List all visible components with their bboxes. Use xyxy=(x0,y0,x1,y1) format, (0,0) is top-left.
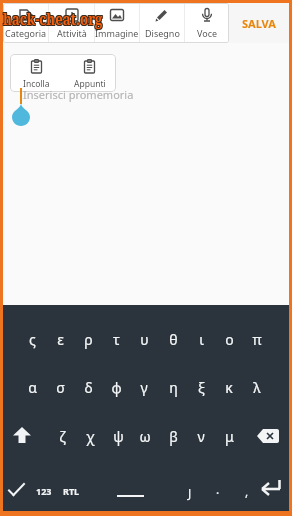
button[interactable]: ω xyxy=(131,425,159,447)
button[interactable]: μ xyxy=(215,425,243,447)
button[interactable] xyxy=(13,427,31,444)
button[interactable] xyxy=(257,429,279,443)
button[interactable]: λ xyxy=(243,376,271,398)
staticText: φ xyxy=(111,378,122,397)
staticText: α xyxy=(28,378,37,397)
button[interactable]: RTL xyxy=(57,480,85,502)
staticText: hack-cheat.org xyxy=(2,8,102,31)
staticText: γ xyxy=(140,378,148,397)
button[interactable]: 123 xyxy=(30,480,58,502)
button[interactable]: δ xyxy=(74,376,102,398)
staticText: 123 xyxy=(36,485,52,497)
button[interactable]: Categoria xyxy=(3,3,48,43)
button[interactable]: Appunti xyxy=(63,54,116,92)
staticText: κ xyxy=(225,378,233,397)
button[interactable]: υ xyxy=(130,328,158,350)
staticText: hack-cheat.org xyxy=(4,7,104,30)
button[interactable]: η xyxy=(159,376,187,398)
button[interactable]: κ xyxy=(215,376,243,398)
button[interactable]: Disegno xyxy=(140,3,184,43)
staticText: Categoria xyxy=(5,27,47,39)
button[interactable]: γ xyxy=(130,376,158,398)
staticText: λ xyxy=(253,378,261,397)
staticText: ζ xyxy=(59,427,66,446)
staticText: hack-cheat.org xyxy=(3,7,103,30)
button[interactable]: Incolla xyxy=(10,54,63,92)
staticText: σ xyxy=(56,378,65,397)
button[interactable]: ς xyxy=(18,328,46,350)
button[interactable]: ι xyxy=(187,328,215,350)
staticText: Disegno xyxy=(145,27,180,39)
button[interactable]: ο xyxy=(215,328,243,350)
staticText: ψ xyxy=(113,427,124,446)
button[interactable]: α xyxy=(18,376,46,398)
button[interactable]: ξ xyxy=(187,376,215,398)
staticText: hack-cheat.org xyxy=(4,8,104,31)
staticText: , xyxy=(245,483,249,499)
staticText: hack-cheat.org xyxy=(2,7,102,30)
staticText: Appunti xyxy=(74,78,106,90)
button[interactable]: Voce xyxy=(185,3,229,43)
button[interactable]: θ xyxy=(159,328,187,350)
staticText: ω xyxy=(139,427,151,446)
button[interactable]: Immagine xyxy=(95,3,139,43)
button[interactable]: , xyxy=(233,480,261,502)
staticText: Inserisci promemoria xyxy=(23,87,134,102)
button[interactable]: SALVA xyxy=(229,3,289,43)
button[interactable]: β xyxy=(159,425,187,447)
staticText: τ xyxy=(113,330,120,349)
button[interactable] xyxy=(8,483,25,496)
staticText: · xyxy=(216,485,220,501)
button[interactable]: χ xyxy=(76,425,104,447)
button[interactable]: φ xyxy=(102,376,130,398)
staticText: J xyxy=(188,485,192,501)
button[interactable]: ν xyxy=(187,425,215,447)
staticText: RTL xyxy=(63,485,80,497)
staticText: Immagine xyxy=(95,27,139,39)
staticText: β xyxy=(169,427,178,446)
button[interactable]: π xyxy=(243,328,271,350)
staticText: Incolla xyxy=(23,78,50,90)
staticText: υ xyxy=(140,330,149,349)
button[interactable]: ε xyxy=(46,328,74,350)
staticText: χ xyxy=(86,427,95,446)
staticText: π xyxy=(252,330,262,349)
button[interactable]: Attività xyxy=(49,3,94,43)
button[interactable]: ζ xyxy=(48,425,76,447)
staticText: ε xyxy=(57,330,64,349)
staticText: Attività xyxy=(57,27,87,39)
staticText: θ xyxy=(169,330,178,349)
staticText: SALVA xyxy=(242,16,276,31)
button[interactable]: σ xyxy=(46,376,74,398)
staticText: ξ xyxy=(198,378,205,397)
staticText: ν xyxy=(197,427,205,446)
button[interactable]: ψ xyxy=(104,425,132,447)
staticText: hack-cheat.org xyxy=(3,8,103,31)
staticText: ο xyxy=(225,330,234,349)
button[interactable]: τ xyxy=(102,328,130,350)
button[interactable]: · xyxy=(204,482,232,504)
button[interactable] xyxy=(261,479,282,496)
button[interactable]: ρ xyxy=(74,328,102,350)
staticText: Voce xyxy=(197,27,218,39)
staticText: hack-cheat.org xyxy=(4,6,104,29)
staticText: ς xyxy=(29,330,36,349)
staticText: ι xyxy=(199,330,204,349)
staticText: hack-cheat.org xyxy=(2,6,102,29)
staticText: μ xyxy=(225,427,234,446)
staticText: η xyxy=(169,378,178,397)
staticText: δ xyxy=(84,378,93,397)
staticText: ρ xyxy=(84,330,93,349)
button[interactable]: J xyxy=(176,482,204,504)
staticText: hack-cheat.org xyxy=(3,6,103,29)
